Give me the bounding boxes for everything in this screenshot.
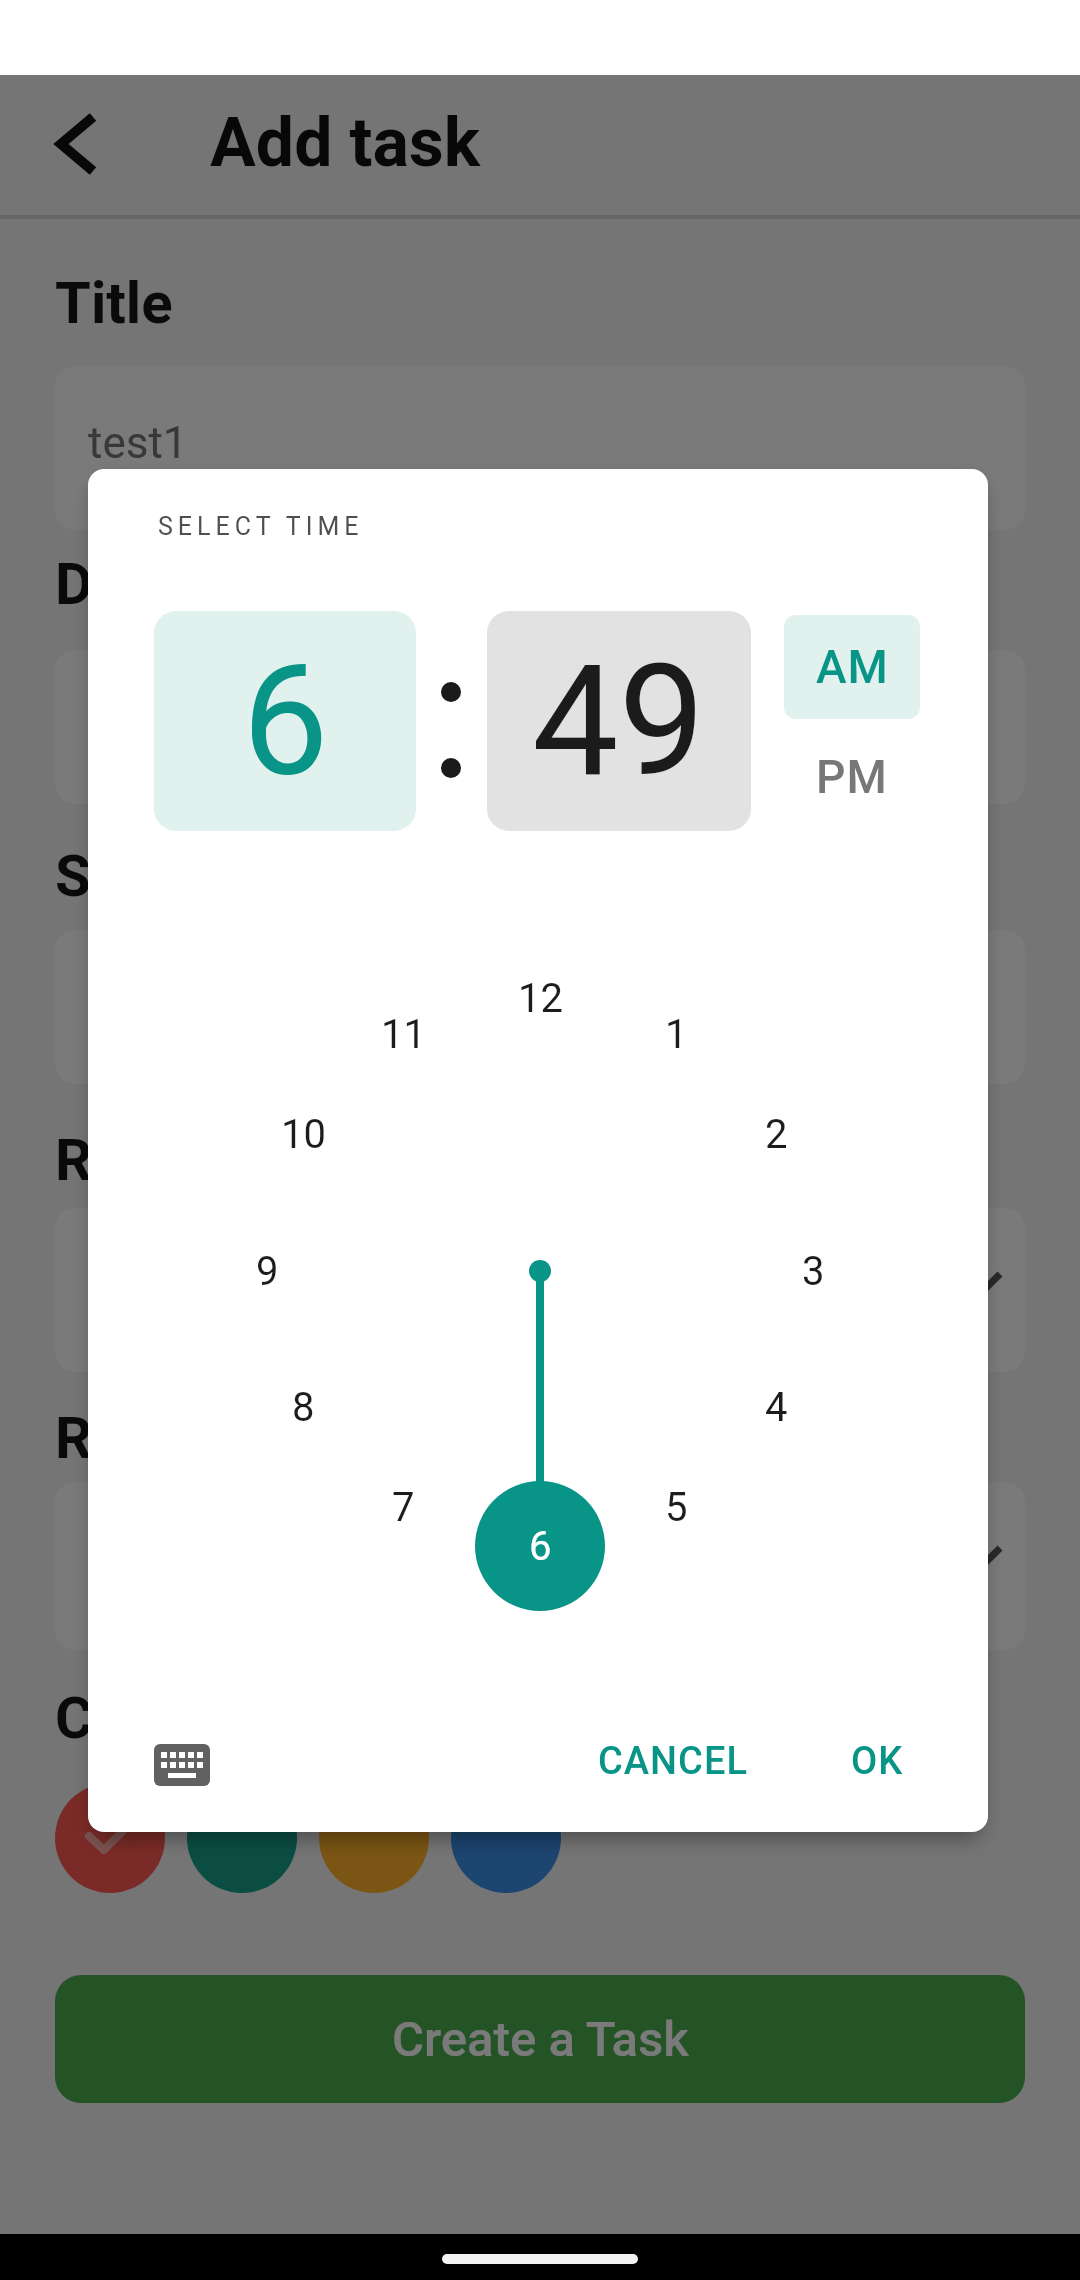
staticText: 2 (765, 1111, 788, 1158)
staticText: AM (816, 640, 889, 694)
button[interactable] (187, 1783, 297, 1893)
button[interactable] (55, 1208, 1025, 1372)
staticText: 3 (802, 1248, 825, 1295)
button[interactable] (144, 1734, 220, 1796)
staticText: 5 (665, 1484, 688, 1531)
button[interactable]: PM (784, 725, 920, 829)
staticText: 6 (529, 1521, 552, 1568)
button[interactable] (55, 650, 1025, 804)
button[interactable] (40, 105, 115, 180)
button[interactable] (55, 1783, 165, 1893)
button[interactable]: OK (830, 1727, 925, 1795)
button[interactable] (55, 930, 1025, 1084)
button[interactable]: 49 (487, 611, 751, 831)
staticText: Start time (55, 842, 315, 904)
staticText: 8 (292, 1384, 315, 1431)
button[interactable] (319, 1783, 429, 1893)
button[interactable] (55, 1482, 1025, 1650)
staticText: 1 (665, 1011, 688, 1058)
staticText: 6 (242, 631, 329, 811)
staticText: 10 (281, 1111, 326, 1158)
staticText: PM (816, 750, 888, 804)
staticText: Create a Task (392, 2011, 689, 2068)
staticText: Repeat (55, 1404, 239, 1466)
staticText: 9 (256, 1248, 279, 1295)
button[interactable] (55, 366, 1025, 530)
staticText: test1 (88, 417, 188, 469)
staticText: Title (55, 269, 173, 331)
staticText: Color (55, 1684, 196, 1746)
staticText: 12 (518, 975, 563, 1022)
staticText: 4 (765, 1384, 788, 1431)
button[interactable]: 6 (154, 611, 416, 831)
staticText: SELECT TIME (158, 512, 364, 541)
staticText: 49 (532, 631, 706, 811)
staticText: Date (55, 550, 175, 612)
staticText: Add task (210, 103, 481, 181)
button[interactable] (451, 1783, 561, 1893)
staticText: Remind at (55, 1126, 320, 1188)
staticText: CANCEL (598, 1739, 748, 1784)
staticText: OK (851, 1739, 904, 1784)
staticText: 7 (392, 1484, 415, 1531)
staticText: 11 (381, 1011, 426, 1058)
button[interactable]: Create a Task (55, 1975, 1025, 2103)
staticText: 6 (529, 1523, 552, 1570)
button[interactable]: CANCEL (575, 1727, 770, 1795)
button[interactable]: AM (784, 615, 920, 719)
